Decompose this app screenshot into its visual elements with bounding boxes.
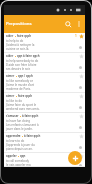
button[interactable]: Favorite [78, 133, 84, 139]
button[interactable]: aimer [4, 73, 85, 93]
button[interactable]: Details [77, 84, 83, 90]
staticText: weekend avec mes amis. [6, 107, 40, 111]
staticText: moderne de Paris. [6, 87, 31, 91]
staticText: Il aide son frère à faire [6, 63, 37, 67]
button[interactable]: Favorite [78, 53, 84, 59]
staticText: 1 [75, 34, 77, 38]
button[interactable]: aider [4, 33, 85, 53]
button[interactable]: s'amuser [4, 113, 85, 133]
button[interactable]: apprendre [4, 133, 85, 153]
staticText: to like to do [6, 99, 23, 103]
staticText: to help to do [6, 39, 24, 43]
staticText: aimer [6, 74, 15, 78]
button[interactable]: Search [62, 18, 74, 30]
button[interactable]: More options [74, 19, 84, 29]
staticText: à faire qqch [22, 114, 39, 118]
staticText: to call somebody [6, 159, 30, 163]
staticText: faire qqch [18, 94, 32, 98]
button[interactable]: Details [77, 144, 83, 150]
staticText: qqn / qqch [18, 74, 33, 78]
staticText: piano depuis un an. [6, 147, 33, 151]
staticText: J'aime faire du sport le [6, 103, 37, 107]
button[interactable]: Details [77, 44, 83, 50]
staticText: appeler [6, 154, 17, 158]
button[interactable]: Favorite [78, 33, 84, 39]
staticText: J'aiderai à nettoyer la [6, 43, 35, 47]
staticText: Prepositions [6, 20, 32, 26]
staticText: s'amuser [6, 114, 19, 118]
button[interactable]: Favorite [78, 93, 84, 99]
button[interactable]: aider [4, 53, 85, 73]
button[interactable]: Details [77, 104, 83, 110]
button[interactable]: Details [77, 124, 83, 130]
staticText: to help somebody to do [6, 59, 39, 63]
staticText: jouer dans le jardin. [6, 127, 33, 131]
staticText: faire qqch [17, 34, 31, 38]
button[interactable]: Favorite [78, 153, 84, 159]
staticText: Je vais appeler ma [6, 163, 31, 167]
staticText: to like somebody or [6, 79, 33, 83]
staticText: to learn to do [6, 139, 25, 143]
staticText: Les enfants s'amusent à [6, 123, 39, 127]
staticText: qqn [20, 154, 26, 158]
button[interactable]: Details [77, 164, 83, 167]
staticText: cuisine ce soir-là. [6, 47, 30, 51]
staticText: aimer [6, 94, 15, 98]
staticText: to have fun doing [6, 119, 30, 123]
staticText: à faire qqch [24, 134, 41, 138]
staticText: qqn à faire qqch [17, 54, 40, 58]
button[interactable]: Favorite [78, 113, 84, 119]
button[interactable]: Favorite [78, 73, 84, 79]
button[interactable]: aimer [4, 93, 85, 113]
staticText: J'apprends à jouer du [6, 143, 35, 147]
staticText: aider [6, 54, 14, 58]
staticText: aider [6, 34, 14, 38]
staticText: ses devoirs le soir. [6, 67, 31, 71]
button[interactable]: Details [77, 64, 83, 70]
button[interactable]: Add preposition [68, 151, 82, 165]
staticText: J'aime le musée d'art [6, 83, 34, 87]
staticText: apprendre [6, 134, 21, 138]
button[interactable]: appeler [4, 153, 85, 167]
